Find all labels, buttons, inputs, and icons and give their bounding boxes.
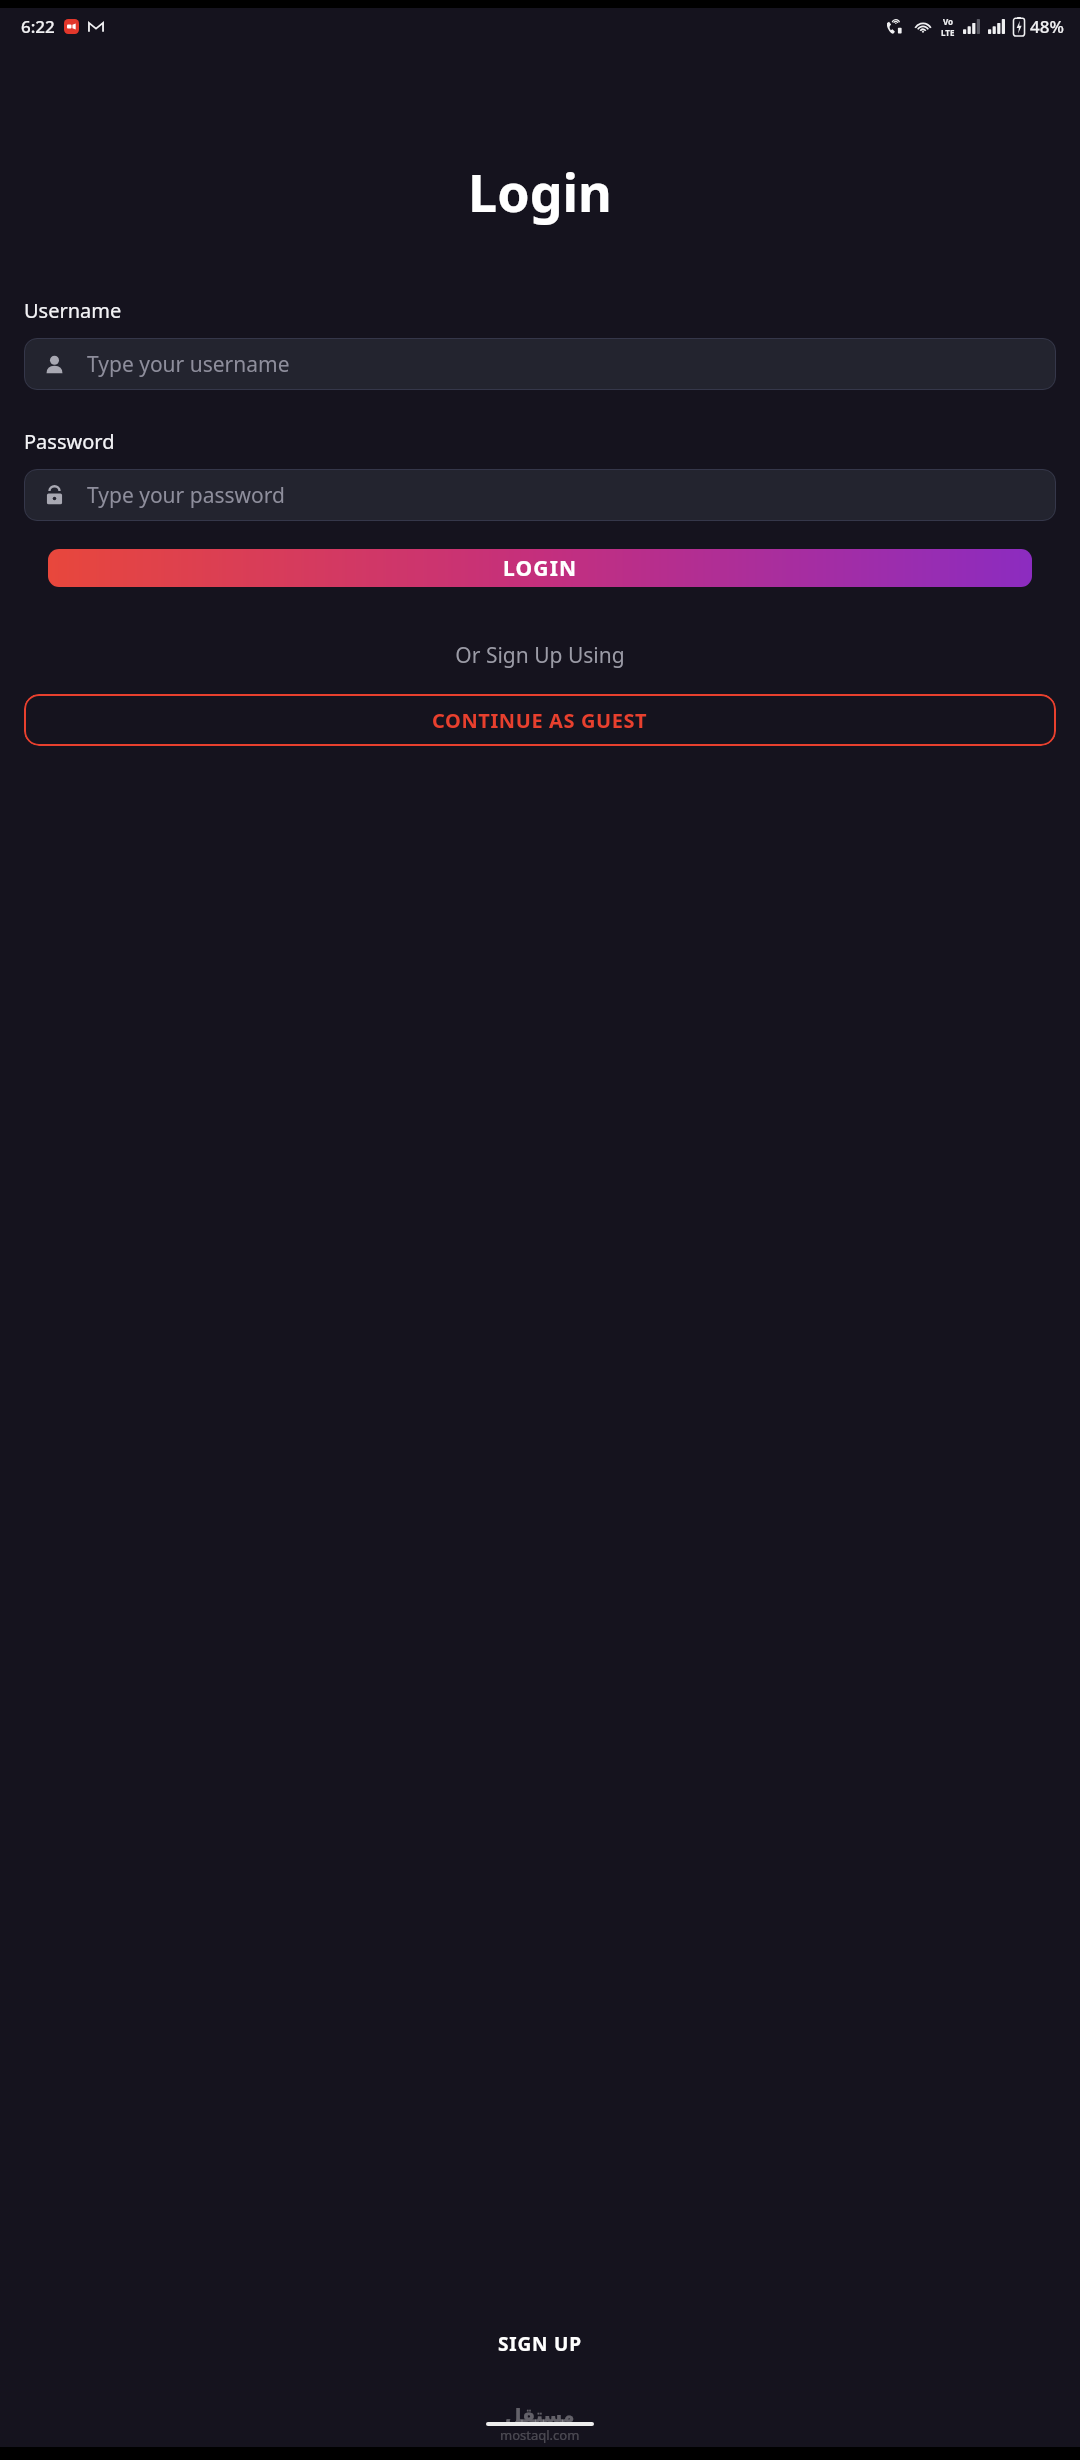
staticText: Type your username — [87, 350, 290, 379]
staticText: Or Sign Up Using — [0, 641, 1080, 670]
staticText: Password — [24, 428, 115, 455]
button[interactable]: Type your username — [24, 338, 1056, 390]
staticText: Username — [24, 297, 122, 324]
staticText: Type your password — [87, 481, 285, 510]
staticText: LOGIN — [503, 554, 578, 583]
staticText: 48% — [1030, 15, 1064, 38]
staticText: مستقل — [505, 2404, 575, 2426]
staticText: LTE — [941, 27, 955, 38]
staticText: CONTINUE AS GUEST — [432, 707, 648, 734]
button[interactable]: SIGN UP — [480, 2325, 600, 2363]
staticText: 6:22 — [21, 15, 55, 38]
button[interactable]: LOGIN — [48, 549, 1032, 587]
staticText: Login — [0, 156, 1080, 227]
staticText: SIGN UP — [498, 2331, 582, 2357]
staticText: mostaql.com — [500, 2426, 580, 2444]
staticText: Vo — [943, 16, 954, 27]
button[interactable]: Type your password — [24, 469, 1056, 521]
button[interactable]: CONTINUE AS GUEST — [24, 694, 1056, 746]
